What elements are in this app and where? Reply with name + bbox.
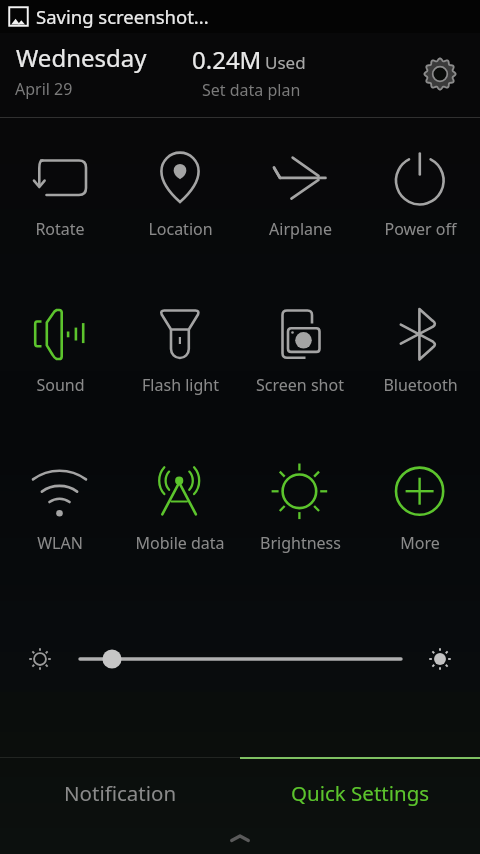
- staticText: 0.24M: [192, 43, 262, 76]
- button[interactable]: Bright: [426, 645, 454, 673]
- staticText: Airplane: [269, 218, 332, 240]
- button[interactable]: Mobile data: [120, 463, 240, 555]
- staticText: Mobile data: [135, 532, 225, 554]
- staticText: Power off: [384, 218, 457, 240]
- button[interactable]: Brightness slider: [72, 639, 412, 679]
- staticText: WLAN: [37, 532, 83, 554]
- staticText: Screen shot: [256, 374, 344, 396]
- staticText: Flash light: [142, 374, 219, 396]
- button[interactable]: Screen shot: [240, 305, 360, 397]
- button[interactable]: Location: [120, 148, 240, 240]
- staticText: Bluetooth: [383, 374, 458, 396]
- staticText: Brightness: [260, 532, 341, 554]
- button[interactable]: Sound: [0, 305, 120, 397]
- staticText: Location: [148, 218, 213, 240]
- button[interactable]: Notification: [0, 763, 240, 823]
- button[interactable]: Brightness: [240, 463, 360, 555]
- staticText: Notification: [64, 779, 177, 807]
- staticText: Sound: [36, 374, 85, 396]
- button[interactable]: Flash light: [120, 305, 240, 397]
- button[interactable]: Rotate: [0, 148, 120, 240]
- staticText: Set data plan: [202, 79, 301, 101]
- button[interactable]: Settings: [416, 50, 464, 98]
- staticText: Quick Settings: [291, 779, 430, 807]
- button[interactable]: Airplane: [240, 148, 360, 240]
- button[interactable]: Bluetooth: [360, 305, 480, 397]
- staticText: Wednesday: [16, 41, 147, 74]
- staticText: Rotate: [35, 218, 85, 240]
- button[interactable]: Dim: [26, 645, 54, 673]
- button[interactable]: WLAN: [0, 463, 120, 555]
- button[interactable]: Collapse: [0, 822, 480, 854]
- staticText: Used: [265, 51, 306, 74]
- staticText: More: [400, 532, 440, 554]
- staticText: Saving screenshot...: [36, 4, 209, 29]
- staticText: April 29: [15, 78, 73, 100]
- button[interactable]: Power off: [360, 148, 480, 240]
- button[interactable]: More: [360, 463, 480, 555]
- button[interactable]: Quick Settings: [240, 763, 480, 823]
